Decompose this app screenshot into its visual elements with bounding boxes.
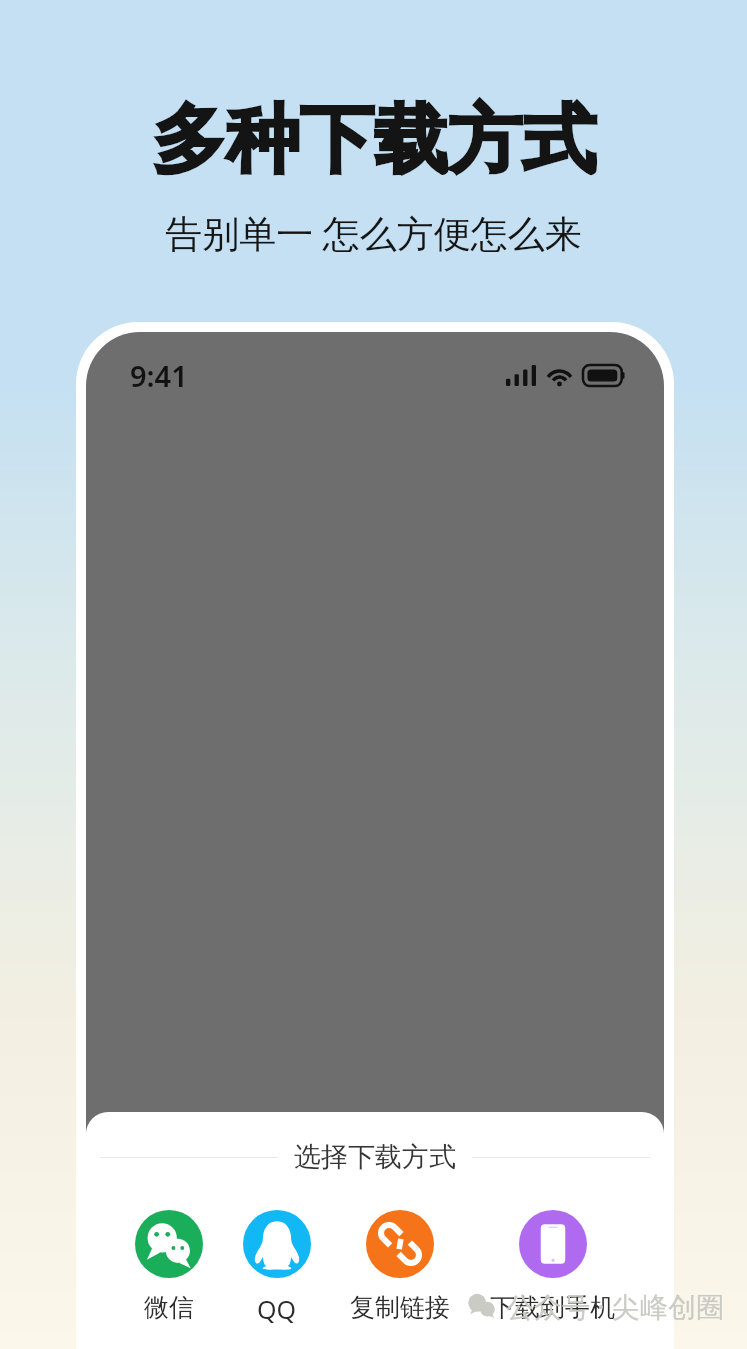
- button[interactable]: WeChat: [131, 1210, 207, 1323]
- staticText: 9:41: [130, 356, 188, 395]
- staticText: 复制链接: [350, 1292, 450, 1323]
- staticText: QQ: [257, 1292, 297, 1326]
- staticText: 下载到手机: [490, 1292, 615, 1323]
- button[interactable]: Download to phone: [486, 1210, 619, 1323]
- other: Copy link: [366, 1210, 434, 1278]
- staticText: 微信: [144, 1292, 194, 1323]
- button[interactable]: Copy link: [346, 1210, 454, 1323]
- staticText: 公众号 · 尖峰创圈: [506, 1287, 725, 1325]
- other: WeChat: [135, 1210, 203, 1278]
- staticText: 告别单一 怎么方便怎么来: [165, 207, 582, 258]
- staticText: 选择下载方式: [294, 1140, 456, 1174]
- staticText: 多种下载方式: [152, 94, 596, 187]
- other: QQ: [243, 1210, 311, 1278]
- button[interactable]: QQ: [239, 1210, 315, 1326]
- other: Download to phone: [519, 1210, 587, 1278]
